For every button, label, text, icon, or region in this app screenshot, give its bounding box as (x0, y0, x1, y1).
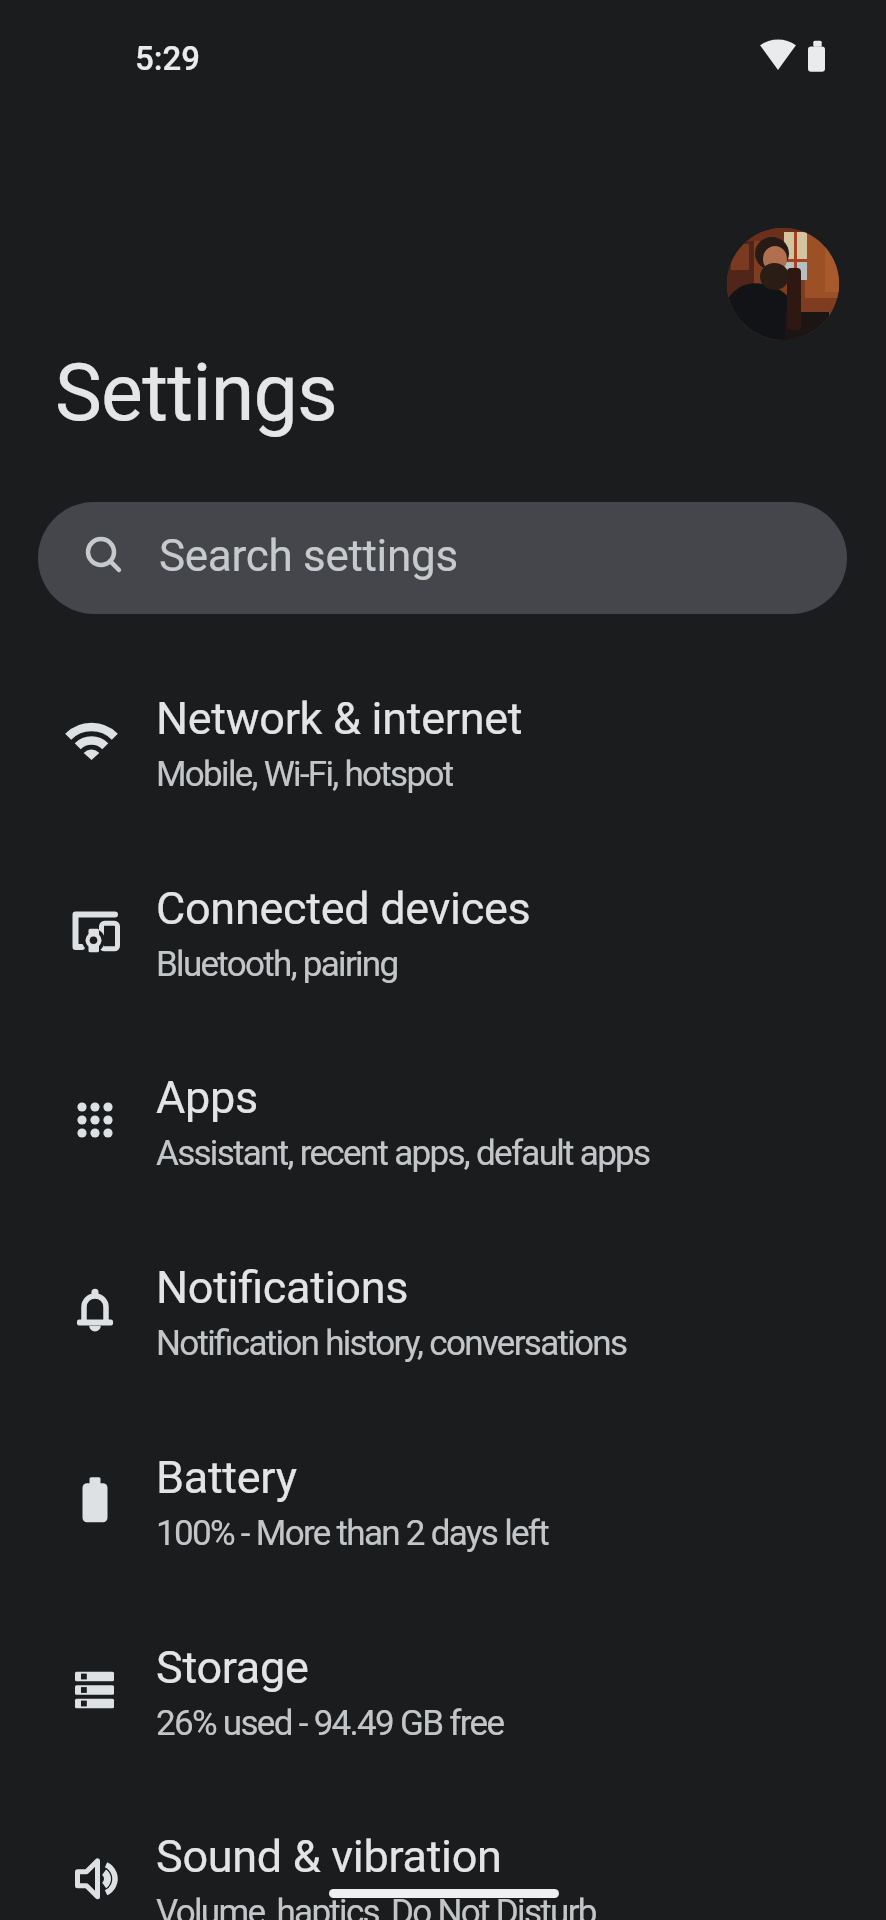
button[interactable]: Storage (0, 1599, 886, 1789)
button[interactable]: Search settings (38, 502, 847, 614)
staticText: Connected devices (156, 882, 531, 935)
staticText: Apps (156, 1071, 258, 1124)
button[interactable]: Sound & vibration (0, 1788, 886, 1920)
staticText: Bluetooth, pairing (156, 944, 398, 985)
staticText: Notification history, conversations (156, 1323, 627, 1364)
staticText: 26% used - 94.49 GB free (156, 1703, 504, 1744)
staticText: 5:29 (135, 39, 201, 78)
button[interactable]: Network & internet (0, 650, 886, 840)
staticText: Volume, haptics, Do Not Disturb (156, 1892, 596, 1920)
staticText: 100% - More than 2 days left (156, 1513, 549, 1554)
button[interactable]: Apps (0, 1029, 886, 1219)
staticText: Sound & vibration (156, 1830, 502, 1883)
staticText: Mobile, Wi-Fi, hotspot (156, 754, 453, 795)
button[interactable]: Notifications (0, 1219, 886, 1409)
staticText: Storage (156, 1641, 309, 1694)
staticText: Battery (156, 1451, 297, 1504)
staticText: Search settings (159, 530, 458, 582)
button[interactable]: Connected devices (0, 840, 886, 1030)
button[interactable] (727, 228, 839, 340)
button[interactable]: Battery (0, 1409, 886, 1599)
staticText: Network & internet (156, 692, 523, 745)
staticText: Notifications (156, 1261, 409, 1314)
staticText: Settings (55, 347, 338, 440)
staticText: Assistant, recent apps, default apps (156, 1133, 650, 1174)
